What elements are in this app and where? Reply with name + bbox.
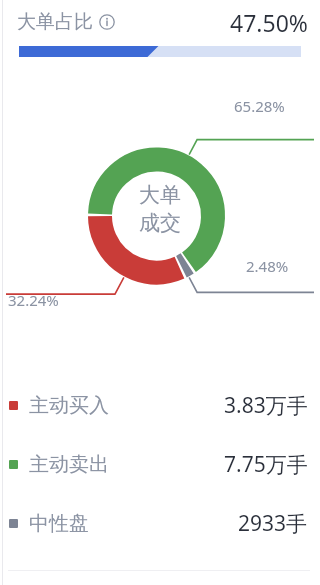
staticText: 2933手 <box>238 509 308 538</box>
staticText: 32.24% <box>8 290 59 310</box>
button[interactable]: 大单占比 <box>0 0 320 44</box>
staticText: 7.75万手 <box>224 450 308 479</box>
button[interactable] <box>0 44 320 66</box>
staticText: 中性盘 <box>29 511 89 536</box>
staticText: 65.28% <box>234 96 285 116</box>
button[interactable]: 中性盘 <box>0 494 320 553</box>
staticText: 47.50% <box>230 7 308 38</box>
staticText: 3.83万手 <box>224 391 308 420</box>
button[interactable]: 主动买入 <box>0 376 320 435</box>
staticText: 主动卖出 <box>29 452 109 477</box>
staticText: 主动买入 <box>29 393 109 418</box>
staticText: 大单占比 <box>17 10 93 34</box>
staticText: 大单 <box>139 182 181 208</box>
staticText: 成交 <box>139 210 181 236</box>
button[interactable]: 主动卖出 <box>0 435 320 494</box>
button[interactable]: 大单成交占比环形图 <box>0 66 320 376</box>
button[interactable]: 信息说明 <box>99 14 115 30</box>
staticText: 2.48% <box>246 256 289 276</box>
